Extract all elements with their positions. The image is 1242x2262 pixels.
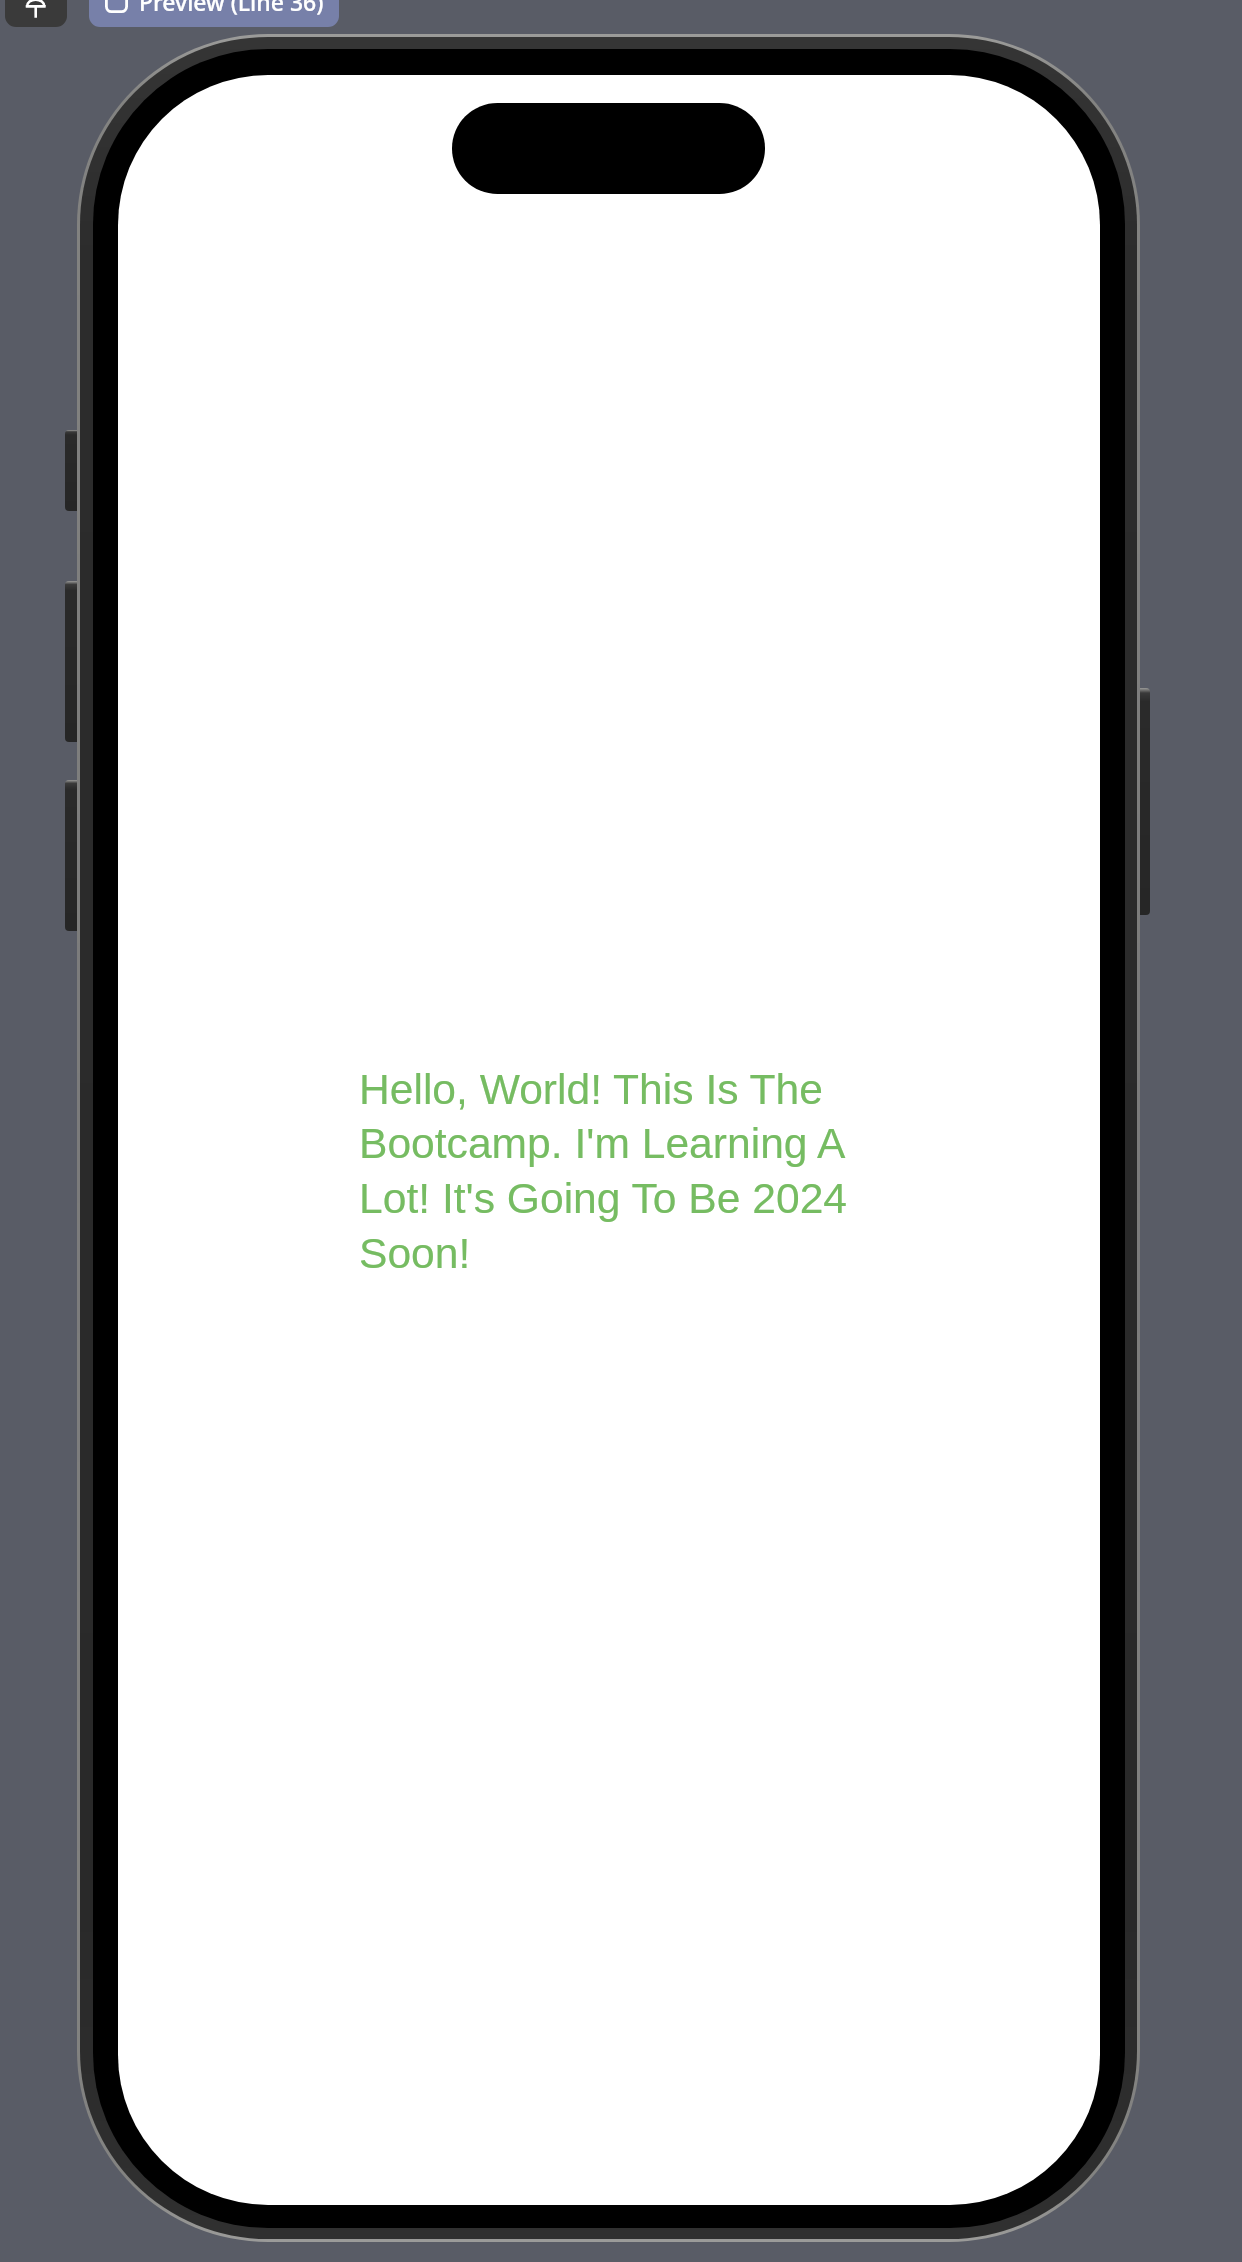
- staticText: Hello, World! This Is The Bootcamp. I'm …: [359, 1065, 879, 1277]
- button[interactable]: Preview (Line 36): [89, 0, 339, 27]
- staticText: Preview (Line 36): [139, 0, 324, 17]
- button[interactable]: Live preview: [5, 0, 67, 27]
